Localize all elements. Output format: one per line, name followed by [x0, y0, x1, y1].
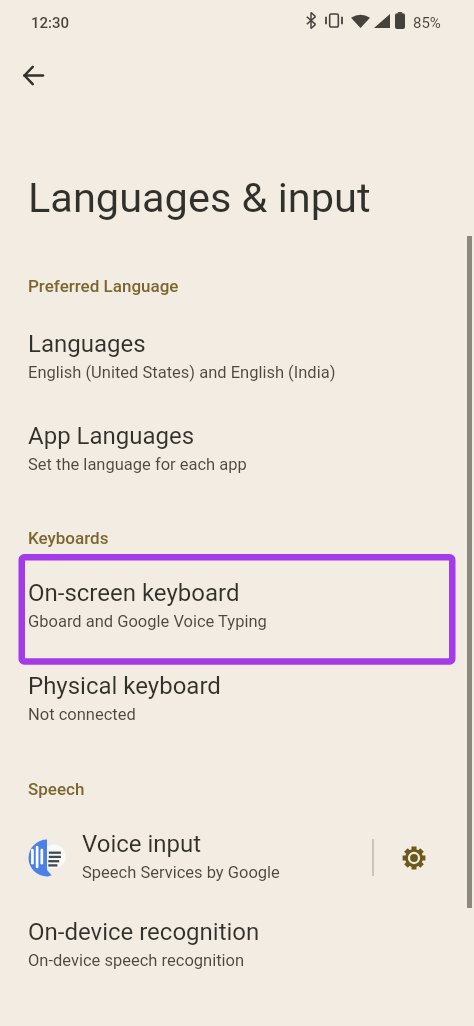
- staticText: Languages & input: [28, 173, 371, 222]
- staticText: Preferred Language: [28, 276, 179, 296]
- staticText: Keyboards: [28, 528, 109, 548]
- staticText: English (United States) and English (Ind…: [28, 363, 336, 382]
- button[interactable]: [13, 55, 53, 95]
- button[interactable]: Voice input: [0, 820, 474, 896]
- staticText: On-device speech recognition: [28, 951, 245, 970]
- button[interactable]: Physical keyboard: [0, 658, 474, 734]
- staticText: Languages: [28, 330, 146, 358]
- staticText: App Languages: [28, 422, 195, 450]
- button[interactable]: App Languages: [0, 408, 474, 484]
- staticText: Speech Services by Google: [82, 863, 280, 882]
- staticText: 12:30: [31, 14, 70, 32]
- staticText: Voice input: [82, 830, 202, 858]
- button[interactable]: [384, 828, 444, 888]
- staticText: Physical keyboard: [28, 672, 221, 700]
- staticText: Set the language for each app: [28, 455, 247, 474]
- staticText: On-screen keyboard: [28, 579, 240, 607]
- staticText: Speech: [28, 779, 85, 799]
- staticText: Not connected: [28, 705, 136, 724]
- staticText: Gboard and Google Voice Typing: [28, 612, 267, 631]
- button[interactable]: Languages: [0, 316, 474, 392]
- button[interactable]: On-screen keyboard: [0, 565, 474, 641]
- staticText: 85%: [413, 14, 441, 32]
- button[interactable]: On-device recognition: [0, 904, 474, 980]
- staticText: On-device recognition: [28, 918, 260, 946]
